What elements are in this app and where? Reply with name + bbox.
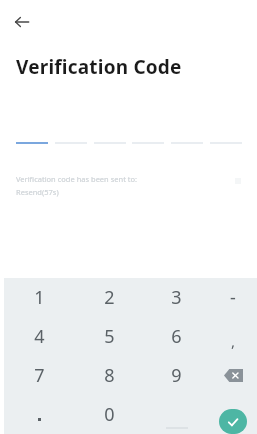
button[interactable]: Back — [8, 8, 36, 36]
staticText: 8 — [104, 363, 115, 388]
staticText: 7 — [34, 363, 45, 388]
button[interactable] — [171, 130, 203, 144]
staticText: Resend(57s) — [16, 187, 59, 197]
button[interactable]: 3 — [144, 278, 209, 317]
button[interactable] — [55, 130, 87, 144]
button[interactable] — [94, 130, 126, 144]
button[interactable] — [132, 130, 164, 144]
staticText: Verification Code — [16, 54, 182, 80]
button[interactable] — [4, 395, 74, 434]
staticText: 4 — [34, 324, 45, 349]
button[interactable] — [16, 130, 48, 144]
button[interactable]: 5 — [74, 317, 144, 356]
button[interactable]: Resend(57s) — [16, 187, 59, 197]
button[interactable]: - — [209, 278, 257, 317]
button[interactable]: Backspace — [209, 356, 257, 395]
staticText: 9 — [171, 363, 182, 388]
button[interactable]: 8 — [74, 356, 144, 395]
button[interactable]: 1 — [4, 278, 74, 317]
staticText: 0 — [104, 402, 115, 427]
button[interactable]: Confirm — [209, 395, 257, 434]
button[interactable]: , — [209, 317, 257, 356]
button[interactable]: 6 — [144, 317, 209, 356]
staticText: 6 — [171, 324, 182, 349]
staticText: 2 — [104, 285, 115, 310]
button[interactable] — [210, 130, 242, 144]
staticText: Verification code has been sent to: — [16, 174, 138, 184]
staticText: 1 — [34, 285, 45, 310]
button[interactable]: 4 — [4, 317, 74, 356]
button[interactable]: 0 — [74, 395, 144, 434]
button[interactable]: 7 — [4, 356, 74, 395]
staticText: , — [231, 331, 236, 351]
staticText: 5 — [104, 324, 115, 349]
button[interactable]: 2 — [74, 278, 144, 317]
staticText: 3 — [171, 285, 182, 310]
button[interactable]: 9 — [144, 356, 209, 395]
staticText: - — [230, 285, 236, 310]
